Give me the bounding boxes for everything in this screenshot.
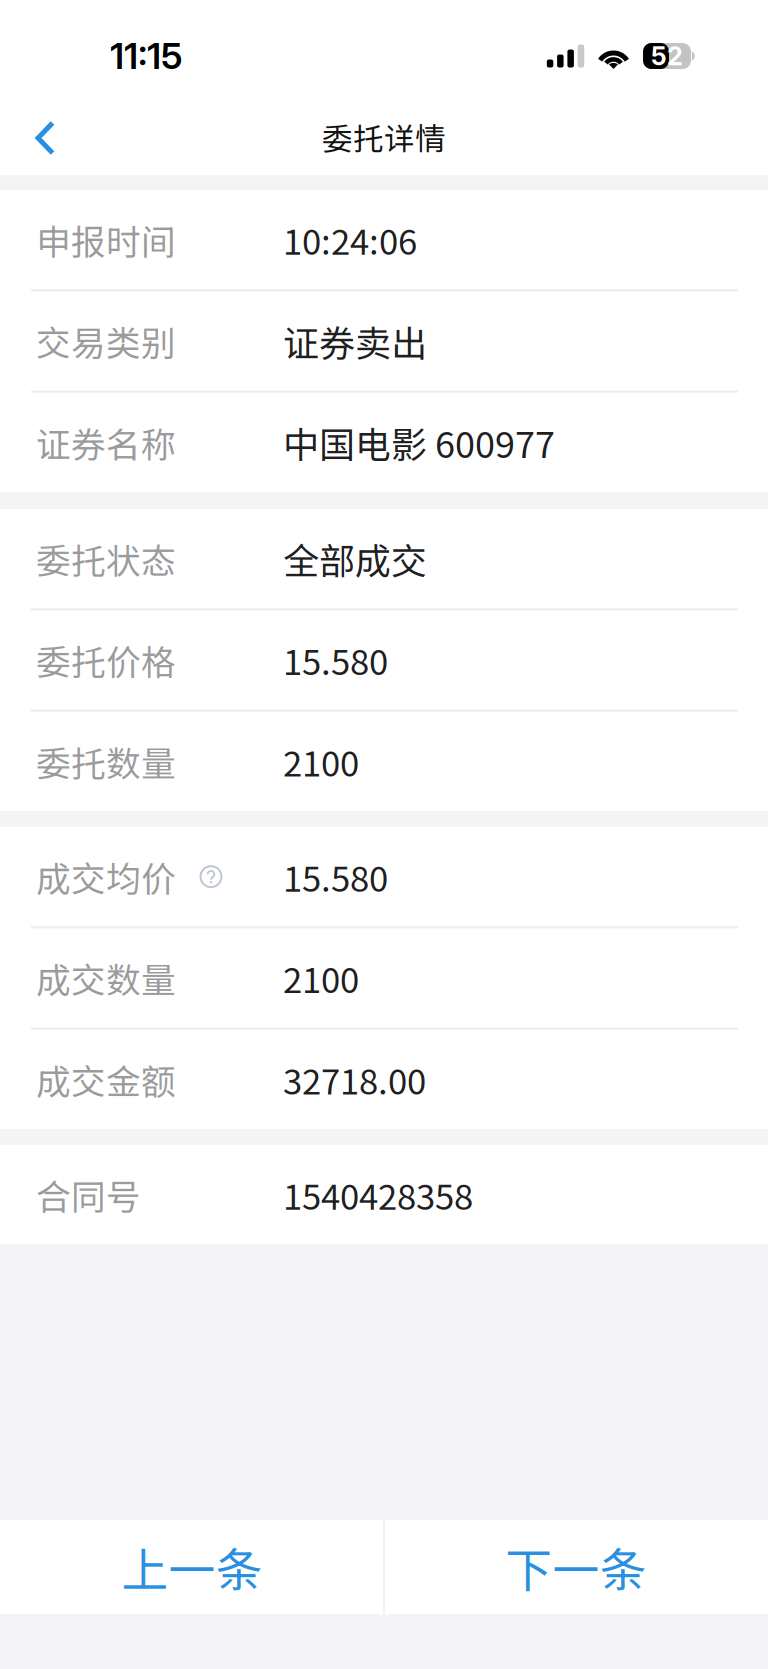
staticText: 1540428358 (283, 1169, 473, 1220)
staticText: 10:24:06 (283, 215, 417, 265)
staticText: 证券名称 (36, 417, 176, 467)
staticText: 委托状态 (36, 534, 176, 584)
staticText: 申报时间 (36, 215, 176, 265)
staticText: 下一条 (505, 1533, 646, 1601)
staticText: 成交金额 (36, 1054, 176, 1104)
staticText: 11:15 (110, 34, 183, 78)
staticText: 32718.00 (283, 1054, 426, 1104)
staticText: 15.580 (283, 635, 388, 685)
staticText: 2100 (283, 953, 359, 1003)
staticText: 交易类别 (36, 316, 176, 366)
staticText: 上一条 (121, 1533, 262, 1601)
staticText: 2100 (283, 736, 359, 786)
button[interactable]: 下一条 (384, 1520, 768, 1614)
staticText: 委托价格 (36, 635, 176, 685)
staticText: 证券卖出 (283, 315, 427, 367)
staticText: 成交数量 (36, 953, 176, 1003)
staticText: 委托详情 (322, 115, 446, 159)
staticText: 全部成交 (283, 533, 427, 585)
staticText: 中国电影 600977 (283, 416, 555, 468)
button[interactable]: 上一条 (0, 1520, 384, 1614)
staticText: 合同号 (36, 1169, 141, 1220)
staticText: 15.580 (283, 851, 388, 902)
staticText: 52 (651, 41, 683, 71)
staticText: 成交均价 (36, 851, 176, 902)
button[interactable]: Back (0, 95, 92, 175)
staticText: 委托数量 (36, 736, 176, 786)
